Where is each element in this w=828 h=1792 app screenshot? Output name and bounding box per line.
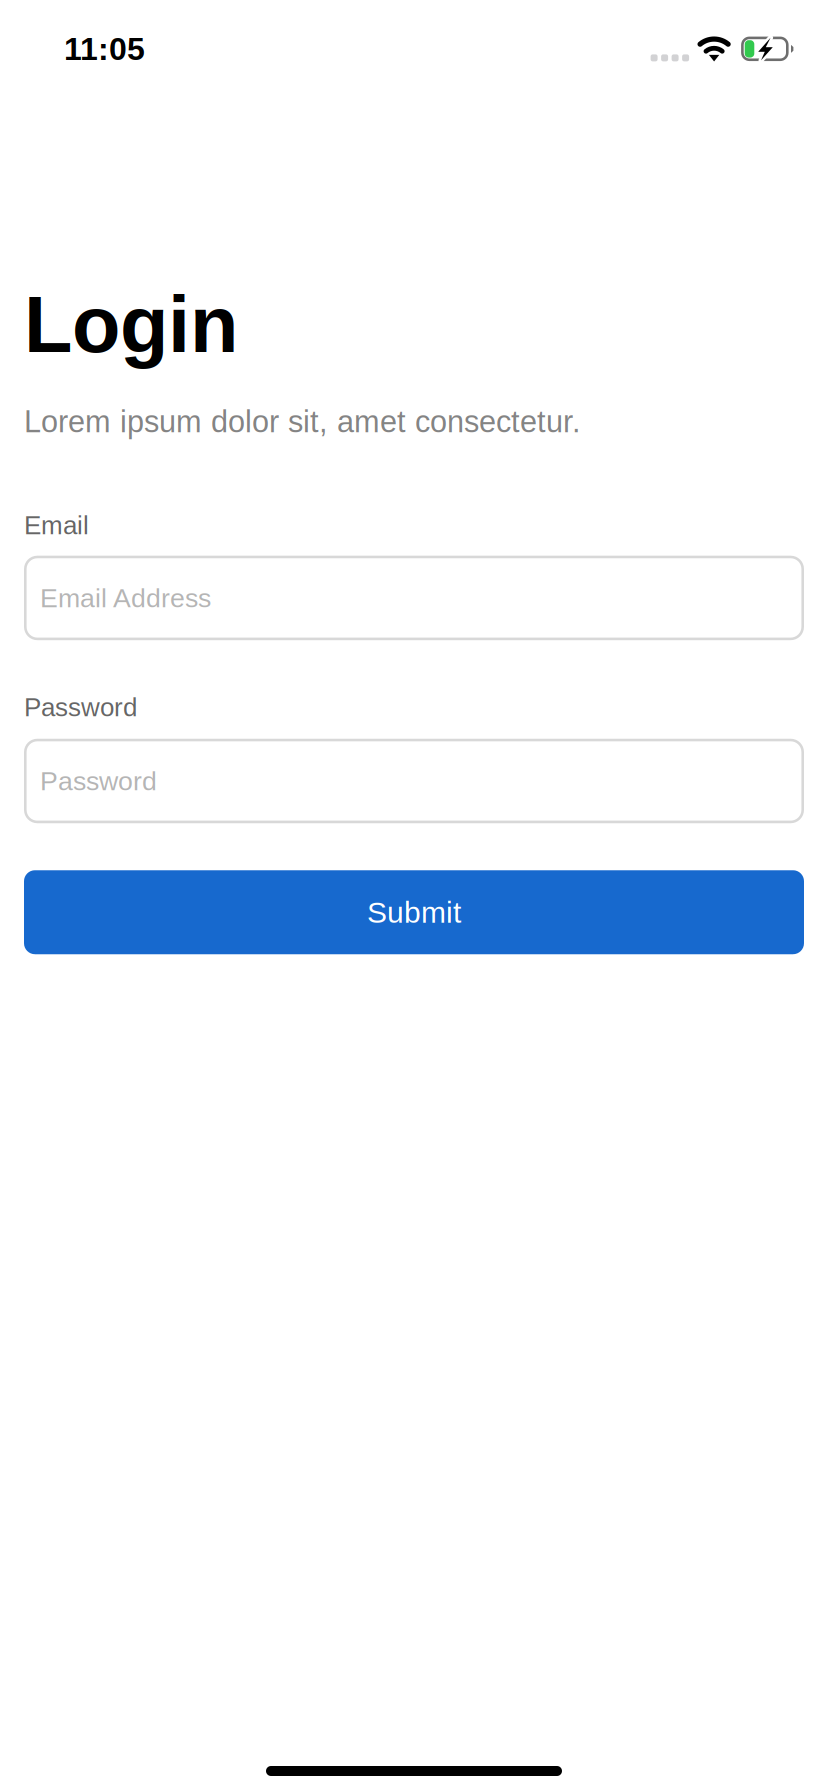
staticText: Lorem ipsum dolor sit, amet consectetur. xyxy=(24,404,581,439)
staticText: Email Address xyxy=(40,583,211,613)
staticText: Password xyxy=(40,766,157,796)
staticText: Submit xyxy=(367,895,461,929)
button[interactable]: Password xyxy=(24,739,804,823)
button[interactable]: Email Address xyxy=(24,556,804,640)
staticText: 11:05 xyxy=(64,31,145,67)
staticText: Login xyxy=(24,280,238,369)
button[interactable]: Submit xyxy=(24,870,804,954)
staticText: Password xyxy=(24,693,137,722)
staticText: Email xyxy=(24,511,89,540)
